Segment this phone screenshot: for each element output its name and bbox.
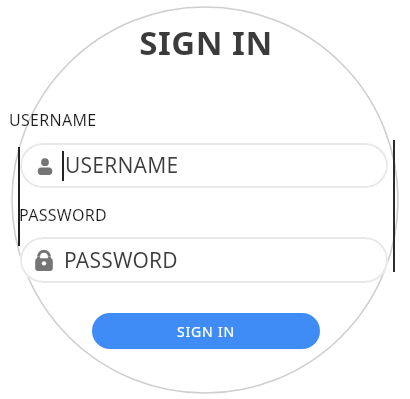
staticText: USERNAME xyxy=(65,151,179,180)
staticText: SIGN IN xyxy=(1,20,410,399)
button[interactable]: SIGN IN xyxy=(92,313,320,349)
staticText: PASSWORD xyxy=(19,204,107,226)
staticText: USERNAME xyxy=(9,109,97,131)
button[interactable]: Password xyxy=(20,237,388,283)
staticText: SIGN IN xyxy=(177,322,235,341)
button[interactable]: User xyxy=(20,143,388,188)
other: User xyxy=(36,157,54,175)
other: Password xyxy=(34,249,54,271)
staticText: PASSWORD xyxy=(64,246,178,275)
